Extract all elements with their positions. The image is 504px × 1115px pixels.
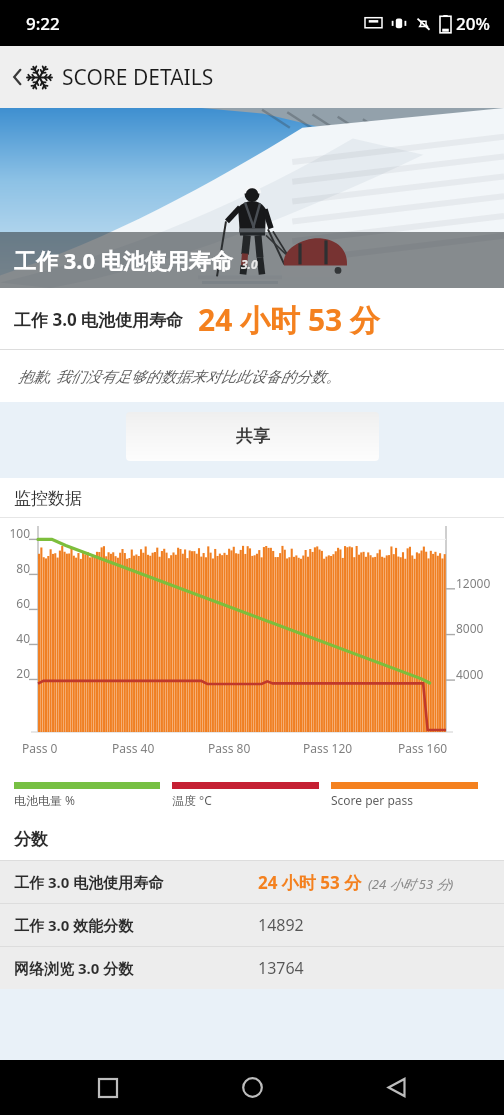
- staticText: 8000: [456, 620, 484, 636]
- button[interactable]: Back: [0, 46, 504, 108]
- staticText: 工作 3.0 效能分数: [14, 915, 258, 935]
- other: Silent mode: [416, 16, 431, 32]
- staticText: 60: [2, 595, 30, 611]
- button[interactable]: 共享: [126, 412, 379, 461]
- staticText: 温度 °C: [172, 792, 212, 808]
- staticText: 20: [2, 665, 30, 681]
- staticText: 24 小时 53 分: [198, 299, 381, 340]
- staticText: 分数: [14, 829, 48, 850]
- staticText: 12000: [456, 575, 491, 591]
- staticText: 100: [2, 525, 30, 541]
- staticText: 共享: [236, 426, 270, 447]
- staticText: 4000: [456, 666, 484, 682]
- staticText: Pass 0: [22, 740, 58, 756]
- staticText: 3.0: [241, 256, 258, 272]
- button[interactable]: 网络浏览 3.0 分数: [0, 947, 504, 989]
- staticText: 工作 3.0 电池使用寿命: [14, 308, 184, 331]
- staticText: 40: [2, 630, 30, 646]
- staticText: (24 小时 53 分): [368, 875, 454, 893]
- staticText: 24 小时 53 分: [258, 871, 362, 894]
- staticText: SCORE DETAILS: [62, 63, 214, 92]
- staticText: 14892: [258, 914, 304, 936]
- button[interactable]: 工作 3.0 效能分数: [0, 904, 504, 946]
- button[interactable]: Home: [216, 1060, 288, 1115]
- staticText: 工作 3.0 电池使用寿命: [14, 245, 233, 275]
- button[interactable]: 工作 3.0 电池使用寿命: [0, 861, 504, 903]
- other: Battery 20%: [440, 15, 451, 33]
- other: Auto rotate: [365, 17, 382, 31]
- other: Vibrate: [391, 16, 407, 31]
- staticText: Pass 120: [303, 740, 353, 756]
- staticText: Score per pass: [331, 792, 414, 808]
- staticText: 80: [2, 560, 30, 576]
- staticText: 20%: [456, 12, 490, 35]
- staticText: 13764: [258, 957, 304, 979]
- button[interactable]: Back: [360, 1060, 432, 1115]
- staticText: 网络浏览 3.0 分数: [14, 958, 258, 978]
- staticText: 抱歉, 我们没有足够的数据来对比此设备的分数。: [18, 366, 341, 386]
- staticText: Pass 80: [208, 740, 251, 756]
- staticText: 9:22: [26, 12, 60, 35]
- button[interactable]: 工作 3.0 电池使用寿命: [0, 108, 504, 288]
- staticText: 监控数据: [14, 488, 82, 509]
- staticText: 电池电量 %: [14, 792, 76, 808]
- staticText: Pass 160: [398, 740, 448, 756]
- other: Back: [10, 65, 24, 89]
- staticText: 工作 3.0 电池使用寿命: [14, 872, 258, 892]
- button[interactable]: Recent apps: [72, 1060, 144, 1115]
- staticText: Pass 40: [112, 740, 155, 756]
